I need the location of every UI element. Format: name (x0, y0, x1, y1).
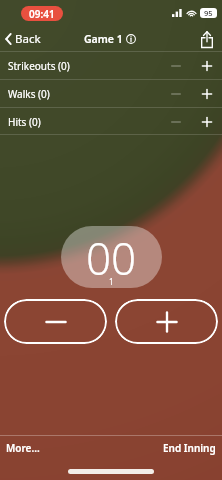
button[interactable]: Increase Strikeouts (0) (192, 52, 222, 79)
button[interactable]: Decrease Hits (0) (160, 108, 192, 135)
staticText: Strikeouts (0) (8, 59, 70, 73)
button[interactable]: Game info (126, 34, 136, 44)
staticText: 00 (86, 228, 137, 288)
staticText: Game 1 (84, 32, 123, 46)
button[interactable]: Back (4, 28, 42, 50)
staticText: More... (6, 441, 40, 455)
button[interactable]: Decrease (4, 299, 107, 344)
staticText: End Inning (163, 441, 216, 455)
staticText: Back (15, 31, 41, 47)
staticText: 09:41 (29, 7, 55, 21)
staticText: Walks (0) (8, 87, 50, 101)
staticText: 95 (204, 8, 213, 18)
button[interactable]: End Inning (162, 438, 217, 458)
button[interactable]: Decrease Walks (0) (160, 80, 192, 107)
staticText: 1 (109, 276, 114, 287)
button[interactable]: Share (197, 29, 217, 49)
staticText: Hits (0) (8, 115, 41, 129)
button[interactable]: Decrease Strikeouts (0) (160, 52, 192, 79)
button[interactable]: Increase Walks (0) (192, 80, 222, 107)
button[interactable]: Increase Hits (0) (192, 108, 222, 135)
button[interactable]: Increase (115, 299, 218, 344)
button[interactable]: More... (5, 438, 41, 458)
